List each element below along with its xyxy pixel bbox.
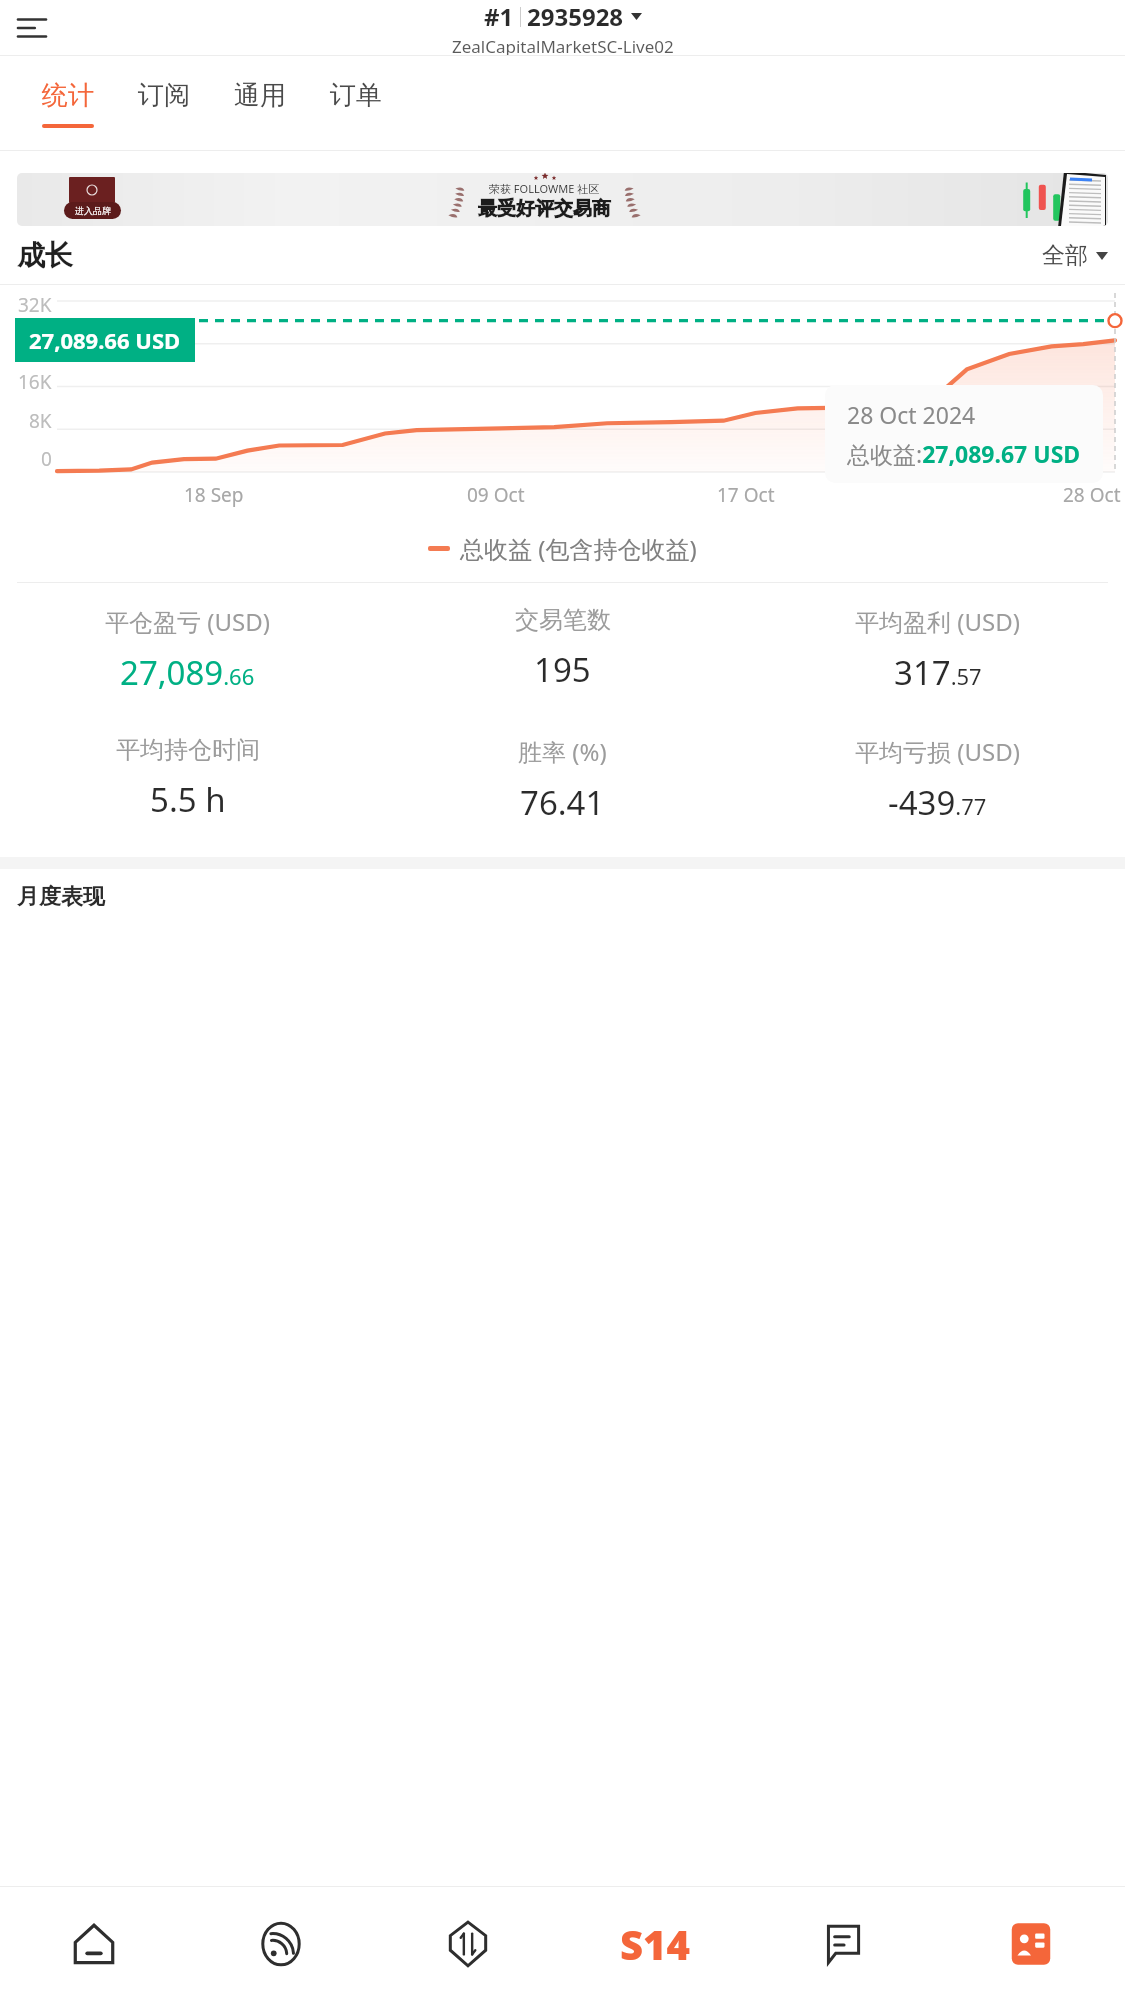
- staticText: 24K: [18, 331, 52, 357]
- staticText: 通用: [234, 79, 286, 112]
- staticText: 18 Sep: [184, 482, 244, 508]
- staticText: 统计: [42, 79, 94, 112]
- button[interactable]: Home: [0, 1886, 187, 2001]
- staticText: 2935928: [527, 0, 624, 33]
- button[interactable]: 平均盈利 (USD): [750, 605, 1125, 695]
- button[interactable]: 通用: [230, 79, 290, 128]
- staticText: 进入品牌: [75, 205, 111, 216]
- staticText: 平均盈利 (USD): [855, 605, 1020, 638]
- staticText: 09 Oct: [467, 482, 525, 508]
- staticText: 28 Oct 2024: [847, 399, 976, 430]
- button[interactable]: 交易笔数: [375, 605, 750, 692]
- staticText: 订阅: [138, 79, 190, 112]
- staticText: 荣获 FOLLOWME 社区: [489, 181, 600, 196]
- button[interactable]: Profile: [937, 1886, 1125, 2001]
- staticText: #1: [484, 0, 514, 33]
- staticText: 成长: [17, 238, 73, 273]
- button[interactable]: 平仓盈亏 (USD): [0, 605, 375, 695]
- staticText: 17 Oct: [717, 482, 775, 508]
- button[interactable]: S14: [561, 1886, 749, 2001]
- button[interactable]: 平均亏损 (USD): [750, 735, 1125, 825]
- staticText: 平仓盈亏 (USD): [105, 605, 270, 638]
- button[interactable]: #1: [452, 0, 674, 55]
- staticText: 27,089.66: [120, 650, 255, 695]
- staticText: 胜率 (%): [518, 735, 607, 768]
- button[interactable]: Feed: [187, 1886, 374, 2001]
- staticText: 76.41: [520, 780, 605, 825]
- staticText: 最受好评交易商: [478, 197, 611, 221]
- staticText: 平均亏损 (USD): [855, 735, 1020, 768]
- button[interactable]: 进入品牌: [17, 173, 1108, 226]
- button[interactable]: 统计: [38, 79, 98, 128]
- staticText: 全部: [1042, 241, 1088, 270]
- staticText: 订单: [330, 79, 382, 112]
- staticText: S14: [620, 1917, 690, 1971]
- staticText: 8K: [29, 408, 52, 434]
- button[interactable]: 订单: [326, 79, 386, 128]
- staticText: 0: [41, 446, 52, 472]
- staticText: 总收益 (包含持仓收益): [460, 532, 697, 565]
- staticText: ZealCapitalMarketSC-Live02: [452, 35, 674, 55]
- staticText: -439.77: [888, 780, 987, 825]
- staticText: 195: [534, 647, 591, 692]
- button[interactable]: Messages: [749, 1886, 937, 2001]
- staticText: 317.57: [894, 650, 982, 695]
- button[interactable]: Menu: [10, 6, 54, 50]
- staticText: 总收益:27,089.67 USD: [847, 438, 1081, 469]
- staticText: 27,089.66 USD: [29, 325, 181, 355]
- button[interactable]: 全部: [1042, 241, 1108, 270]
- staticText: 16K: [18, 369, 52, 395]
- button[interactable]: 胜率 (%): [375, 735, 750, 825]
- staticText: 5.5 h: [150, 777, 226, 822]
- staticText: 月度表现: [17, 883, 105, 911]
- button[interactable]: 平均持仓时间: [0, 735, 375, 822]
- button[interactable]: 订阅: [134, 79, 194, 128]
- staticText: 32K: [18, 292, 52, 318]
- staticText: 平均持仓时间: [116, 735, 260, 765]
- staticText: 交易笔数: [515, 605, 611, 635]
- staticText: 28 Oct: [1063, 482, 1121, 508]
- button[interactable]: Trade: [374, 1886, 561, 2001]
